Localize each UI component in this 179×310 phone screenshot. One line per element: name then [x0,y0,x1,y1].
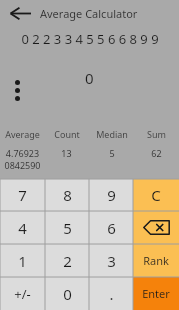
staticText: 0 [85,68,94,88]
button[interactable]: Back [0,0,40,26]
staticText: 0 [63,284,72,304]
staticText: Sum [147,128,166,140]
staticText: 1 [18,251,27,271]
staticText: . [109,284,114,304]
staticText: C [151,185,161,205]
staticText: 8 [63,185,72,205]
staticText: 9 [107,185,116,205]
staticText: 5 [63,218,72,238]
button[interactable]: 9 [89,179,133,211]
staticText: 4.76923 0842590 [4,147,41,171]
staticText: 7 [18,185,27,205]
button[interactable]: 2 [45,244,89,277]
button[interactable]: 0 [45,277,89,310]
staticText: 13 [61,147,72,159]
button[interactable]: +/- [0,277,45,310]
button[interactable]: Enter [133,277,179,310]
staticText: 6 [107,218,116,238]
staticText: 4 [18,218,27,238]
button[interactable]: 6 [89,211,133,244]
button[interactable]: 8 [45,179,89,211]
staticText: Enter [142,286,170,301]
button[interactable]: 7 [0,179,45,211]
button[interactable]: 5 [45,211,89,244]
button[interactable]: C [133,179,179,211]
staticText: 0 2 2 3 3 4 5 5 6 6 8 9 9 [21,30,159,48]
staticText: 2 [63,251,72,271]
staticText: 5 [109,147,115,159]
staticText: Average [5,128,40,140]
staticText: 3 [107,251,116,271]
button[interactable]: Backspace [133,211,179,244]
button[interactable]: Rank [133,244,179,277]
button[interactable]: . [89,277,133,310]
staticText: Count [54,128,80,140]
button[interactable]: 4 [0,211,45,244]
button[interactable]: More options [7,68,27,112]
staticText: 62 [151,147,162,159]
staticText: Rank [143,253,169,268]
button[interactable]: 1 [0,244,45,277]
button[interactable]: 3 [89,244,133,277]
staticText: Average Calculator [40,6,138,21]
staticText: +/- [14,285,31,303]
staticText: Median [96,128,128,140]
